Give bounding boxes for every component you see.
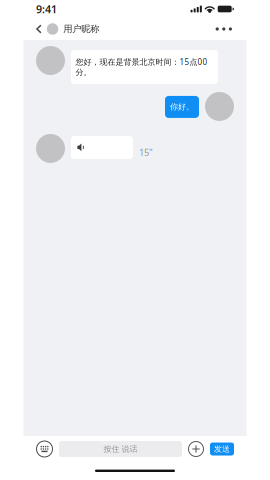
button[interactable]: 发送 [210, 442, 234, 455]
staticText: 发送 [214, 444, 230, 454]
staticText: 按住 说话 [103, 444, 137, 454]
staticText: 你好。 [170, 102, 194, 112]
button[interactable]: 用户昵称 [36, 19, 99, 39]
staticText: 您好，现在是背景北京时间：15点00分。 [75, 56, 207, 77]
staticText: 用户昵称 [63, 23, 99, 35]
button[interactable]: More options [188, 438, 204, 460]
button[interactable]: Play voice message [71, 136, 133, 159]
button[interactable]: Keyboard [36, 437, 53, 460]
button[interactable]: 按住 说话 [59, 441, 182, 457]
button[interactable]: More [214, 21, 234, 37]
staticText: 15" [139, 146, 153, 158]
staticText: 9:41 [36, 2, 57, 16]
